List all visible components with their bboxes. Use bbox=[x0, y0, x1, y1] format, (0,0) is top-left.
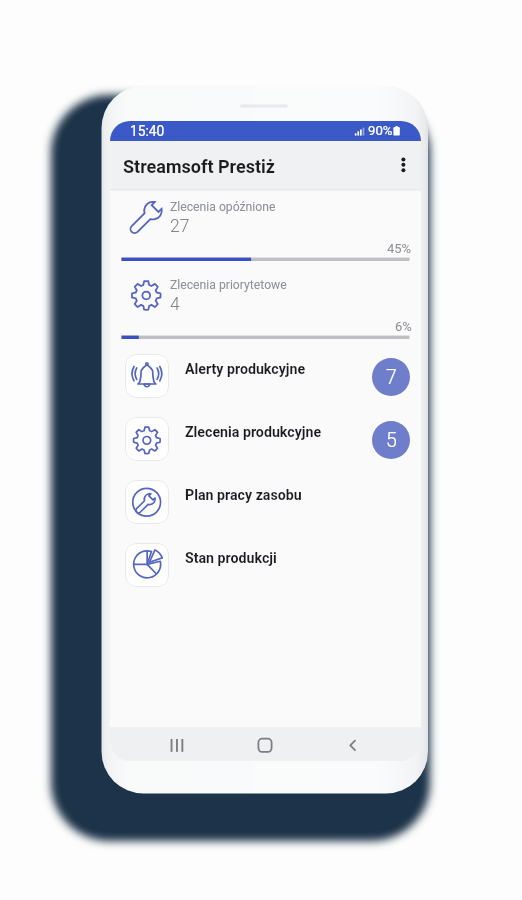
staticText: Zlecenia priorytetowe bbox=[170, 278, 287, 292]
button[interactable]: Stan produkcji bbox=[110, 534, 421, 597]
button[interactable]: Recents bbox=[160, 728, 194, 760]
staticText: 4 bbox=[170, 294, 180, 315]
staticText: 6% bbox=[395, 319, 412, 334]
staticText: Plan pracy zasobu bbox=[185, 487, 302, 504]
button[interactable]: Zlecenia opóźnione bbox=[110, 189, 421, 267]
button[interactable]: Back bbox=[336, 728, 370, 760]
button[interactable]: Zlecenia priorytetowe bbox=[110, 267, 421, 345]
staticText: Streamsoft Prestiż bbox=[123, 156, 276, 177]
staticText: 5 bbox=[386, 429, 397, 452]
button[interactable]: Zlecenia produkcyjne bbox=[110, 408, 421, 471]
staticText: 15:40 bbox=[130, 123, 165, 139]
staticText: Zlecenia produkcyjne bbox=[185, 424, 322, 441]
staticText: Alerty produkcyjne bbox=[185, 361, 306, 378]
staticText: Zlecenia opóźnione bbox=[170, 200, 276, 214]
staticText: Stan produkcji bbox=[185, 550, 277, 567]
staticText: 27 bbox=[170, 216, 190, 237]
button[interactable]: Alerty produkcyjne bbox=[110, 345, 421, 408]
button[interactable]: More options bbox=[389, 143, 417, 187]
button[interactable]: Home bbox=[248, 728, 282, 760]
button[interactable]: Plan pracy zasobu bbox=[110, 471, 421, 534]
staticText: 7 bbox=[386, 366, 397, 389]
staticText: 45% bbox=[387, 241, 412, 256]
staticText: 90% bbox=[368, 123, 393, 138]
